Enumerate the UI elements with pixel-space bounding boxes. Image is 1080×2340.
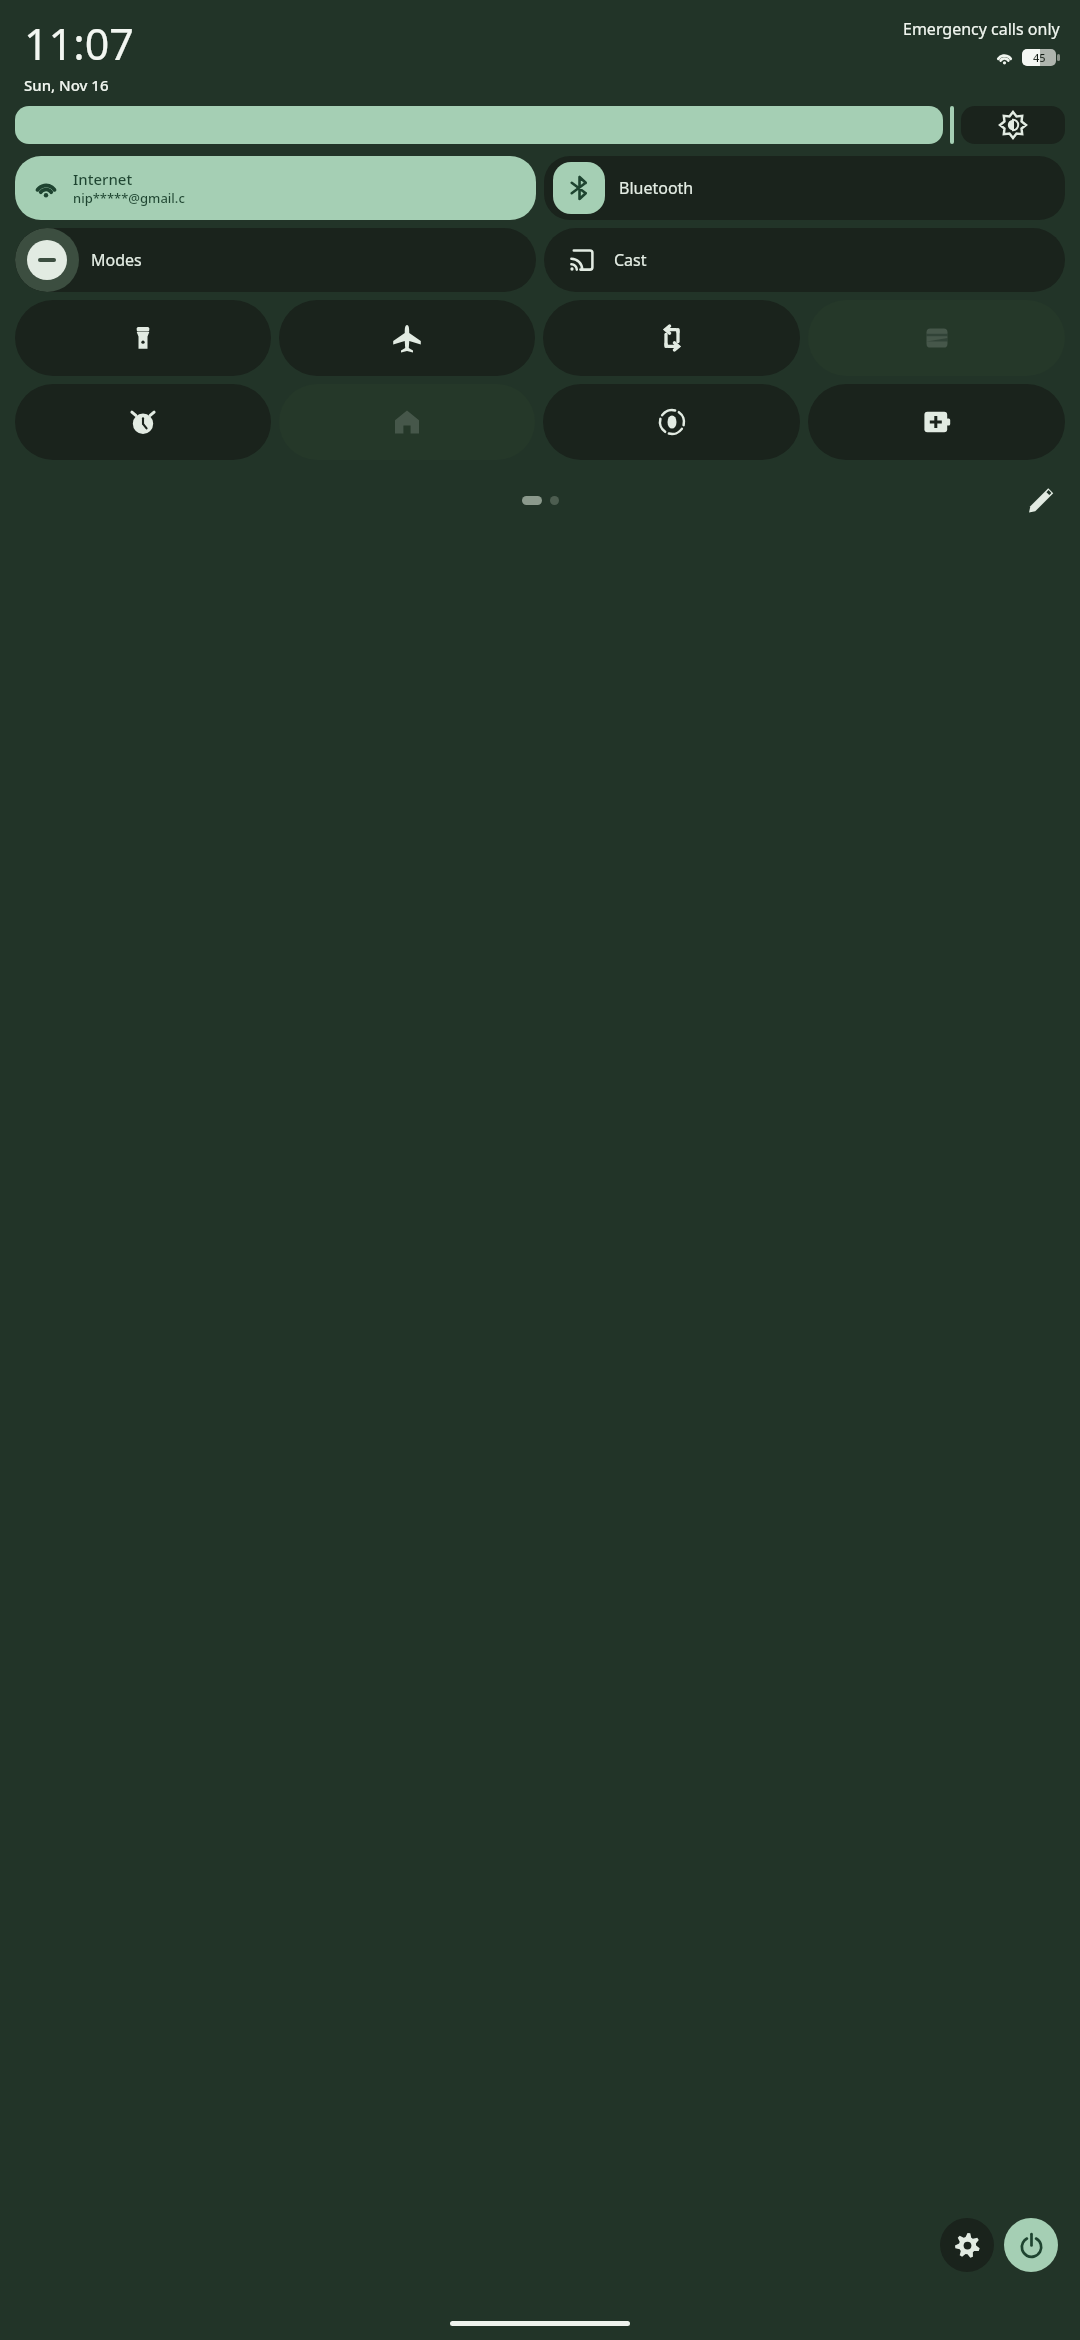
staticText: 11:07 (24, 14, 134, 73)
staticText: Sun, Nov 16 (24, 75, 109, 95)
button[interactable]: Alarm (15, 384, 271, 460)
button[interactable]: Flashlight (15, 300, 271, 376)
staticText: Emergency calls only (903, 18, 1060, 40)
button[interactable]: Settings (940, 2218, 994, 2272)
button[interactable]: Edit tiles (1022, 482, 1060, 518)
button[interactable]: Cast (544, 228, 1065, 292)
staticText: 45 (1033, 50, 1046, 65)
button[interactable]: Wallet (808, 300, 1065, 376)
button[interactable]: Airplane mode (279, 300, 535, 376)
button[interactable]: Nearby Share (543, 384, 800, 460)
staticText: nip*****@gmail.c (73, 189, 185, 207)
button[interactable]: Modes (15, 228, 536, 292)
button[interactable]: Bluetooth (544, 156, 1065, 220)
staticText: Modes (91, 249, 142, 271)
button[interactable]: Internet (15, 156, 536, 220)
button[interactable]: Home (279, 384, 535, 460)
button[interactable]: Power (1004, 2218, 1058, 2272)
button[interactable]: Auto rotate (543, 300, 800, 376)
button[interactable]: Battery saver (808, 384, 1065, 460)
staticText: Internet (73, 169, 133, 189)
button[interactable]: Auto brightness (961, 106, 1065, 144)
staticText: Cast (614, 249, 647, 271)
button[interactable]: Brightness (15, 106, 943, 144)
staticText: Bluetooth (619, 177, 694, 199)
